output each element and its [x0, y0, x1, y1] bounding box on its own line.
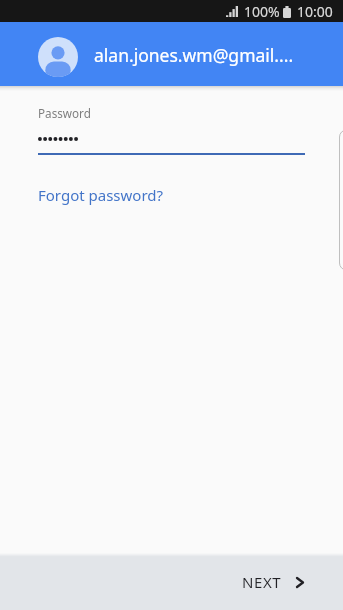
button[interactable]: Account	[38, 37, 78, 77]
staticText: 100%	[244, 2, 280, 21]
staticText: alan.jones.wm@gmail....	[94, 43, 294, 67]
button[interactable]: Account	[0, 22, 343, 86]
staticText: Password	[38, 105, 91, 121]
button[interactable]: Forgot password?	[0, 185, 188, 205]
button[interactable]: NEXT	[224, 557, 343, 610]
staticText: NEXT	[242, 572, 282, 592]
staticText: 10:00	[297, 2, 333, 21]
